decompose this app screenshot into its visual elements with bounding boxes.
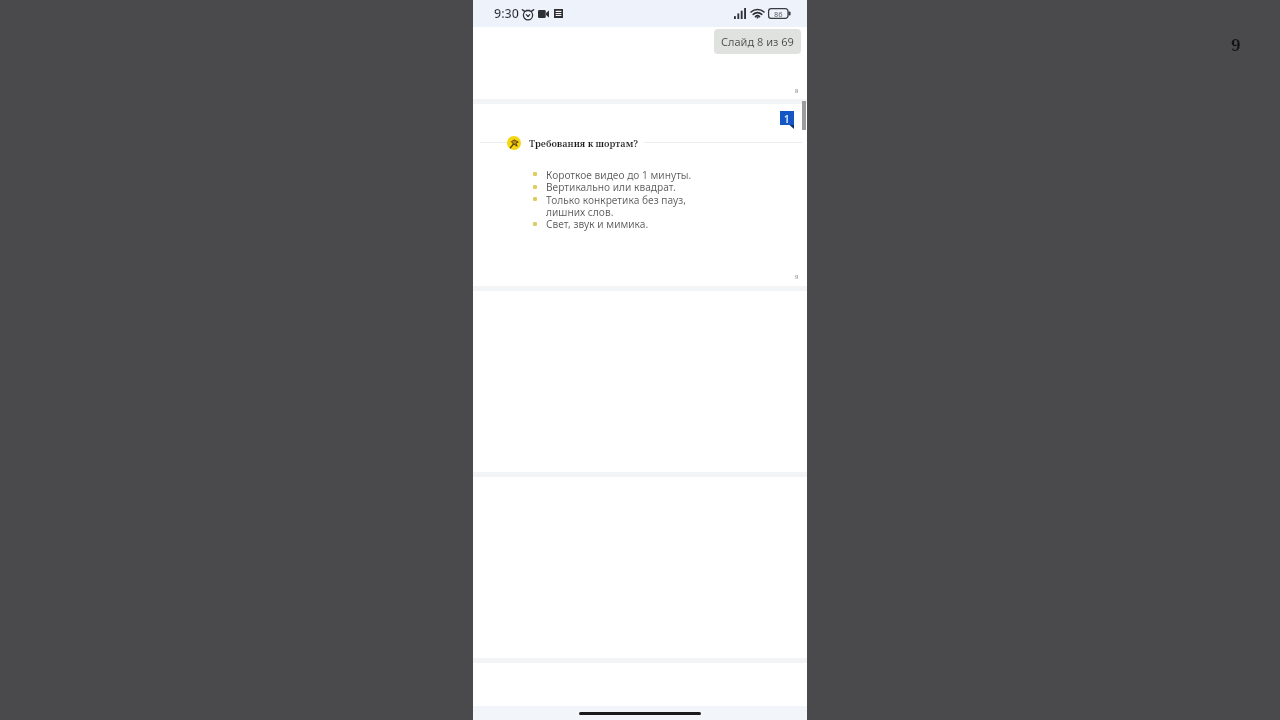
- staticText: 8: [795, 87, 799, 95]
- staticText: Короткое видео до 1 минуты.: [546, 168, 692, 182]
- staticText: Только конкретика без пауз,: [546, 193, 686, 207]
- staticText: Требования к шортам?: [529, 137, 639, 149]
- button[interactable]: Комментарий: [473, 104, 807, 286]
- staticText: 9: [1231, 33, 1241, 56]
- staticText: Свет, звук и мимика.: [546, 217, 649, 231]
- button[interactable]: 8: [473, 27, 807, 99]
- button[interactable]: Требования к шортам?: [507, 136, 644, 150]
- staticText: 9: [795, 273, 799, 281]
- staticText: Вертикально или квадрат.: [546, 180, 676, 194]
- staticText: 9:30: [494, 5, 519, 22]
- button[interactable]: Домой: [579, 712, 701, 715]
- button[interactable]: Комментарий: [780, 111, 794, 129]
- button[interactable]: Слайд 8 из 69: [714, 29, 801, 54]
- staticText: Слайд 8 из 69: [721, 34, 794, 49]
- staticText: 1: [784, 112, 790, 126]
- staticText: 86: [774, 9, 783, 19]
- staticText: лишних слов.: [546, 205, 614, 219]
